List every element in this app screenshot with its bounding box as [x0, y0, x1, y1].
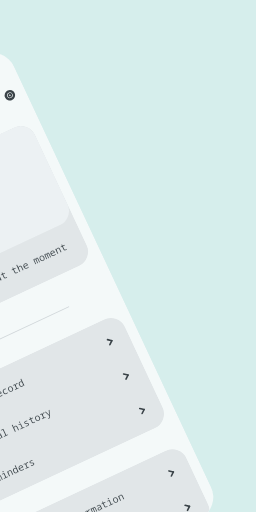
button[interactable]: Personal information — [0, 447, 197, 512]
button[interactable]: Settings — [0, 79, 26, 111]
button[interactable]: Medical history — [0, 350, 152, 473]
button[interactable]: Notifications — [8, 481, 212, 512]
button[interactable]: Nothing planned at the moment — [0, 121, 93, 348]
button[interactable]: Health record — [0, 315, 136, 439]
staticText: Medical history — [0, 404, 54, 455]
button[interactable]: Reminders — [0, 384, 168, 507]
staticText: Personal information — [11, 489, 126, 512]
staticText: Nothing planned at the moment — [0, 239, 69, 326]
staticText: Reminders — [0, 454, 37, 490]
staticText: Health record — [0, 375, 27, 421]
